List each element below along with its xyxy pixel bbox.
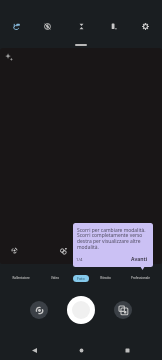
button[interactable]: Recent apps [116, 339, 138, 360]
button[interactable]: Watermark [100, 13, 126, 39]
button[interactable]: Take photo [67, 296, 95, 324]
staticText: Foto [77, 276, 85, 281]
button[interactable]: Video [35, 271, 75, 285]
button[interactable]: Back [23, 339, 45, 360]
staticText: Rallentatore [12, 276, 30, 280]
staticText: Professionale [131, 276, 150, 280]
button[interactable]: Flash off [34, 13, 60, 39]
button[interactable]: Timer [68, 13, 94, 39]
button[interactable]: Gallery [114, 301, 132, 319]
button[interactable]: Filters [56, 244, 71, 259]
staticText: Video [51, 276, 59, 280]
button[interactable]: Settings [132, 13, 158, 39]
staticText: Ritratto [100, 276, 111, 280]
button[interactable]: Ritratto [85, 271, 125, 285]
button[interactable]: Home [70, 339, 92, 360]
button[interactable]: Avanti [131, 256, 148, 263]
staticText: Scorri per cambiare modalità. Scorri com… [77, 227, 151, 251]
staticText: 1/4 [76, 257, 83, 263]
button[interactable]: Foto [73, 275, 89, 282]
button[interactable]: Smart AI [3, 13, 29, 39]
button[interactable]: Professionale [120, 271, 160, 285]
button[interactable]: Lens mode [7, 243, 22, 258]
button[interactable]: Rallentatore [1, 271, 41, 285]
button[interactable]: Switch camera [30, 301, 48, 319]
